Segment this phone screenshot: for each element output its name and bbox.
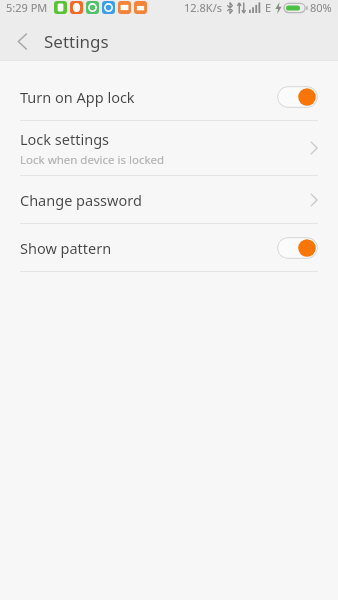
staticText: Show pattern bbox=[20, 238, 112, 258]
staticText: Change password bbox=[20, 190, 142, 210]
staticText: Turn on App lock bbox=[20, 87, 135, 107]
staticText: E bbox=[265, 0, 272, 15]
staticText: Settings bbox=[44, 30, 109, 53]
staticText: 5:29 PM bbox=[6, 0, 48, 15]
staticText: 80% bbox=[310, 0, 332, 15]
button[interactable]: Change password bbox=[0, 176, 338, 223]
staticText: Lock when device is locked bbox=[20, 152, 165, 168]
staticText: 12.8K/s bbox=[184, 0, 222, 15]
button[interactable]: Lock settings bbox=[0, 121, 338, 175]
button[interactable]: Back bbox=[0, 22, 44, 60]
staticText: Lock settings bbox=[20, 129, 110, 149]
button[interactable]: Turn on App lock bbox=[0, 73, 338, 120]
button[interactable]: Show pattern bbox=[0, 224, 338, 271]
